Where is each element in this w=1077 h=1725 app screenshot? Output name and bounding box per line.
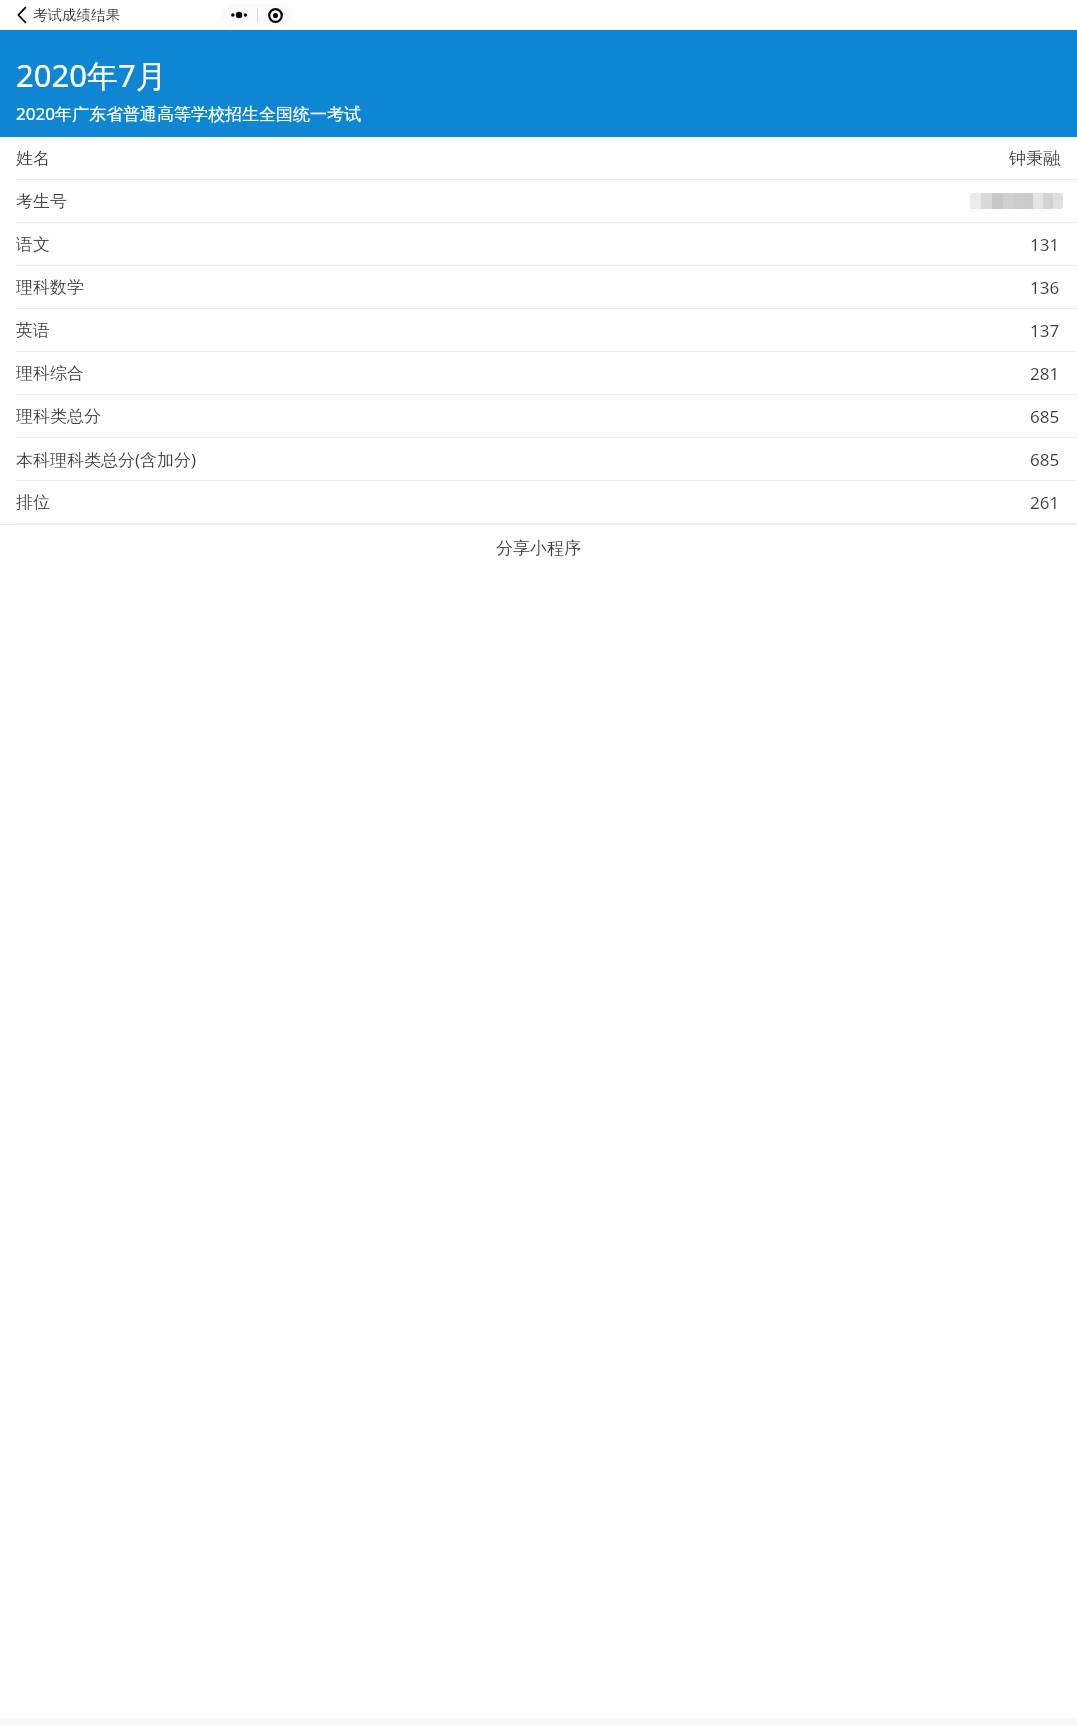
staticText: 261	[1030, 491, 1060, 514]
button[interactable]: 排位	[0, 481, 1077, 523]
staticText: 英语	[16, 320, 50, 341]
staticText: 钟秉融	[1009, 148, 1060, 169]
button[interactable]: 本科理科类总分(含加分)	[0, 438, 1077, 480]
staticText: 131	[1030, 233, 1060, 256]
staticText: 分享小程序	[496, 538, 581, 559]
button[interactable]: 更多	[221, 4, 257, 26]
button[interactable]: 理科综合	[0, 352, 1077, 394]
button[interactable]: 考生号	[0, 180, 1077, 222]
button[interactable]: 理科数学	[0, 266, 1077, 308]
staticText: 理科数学	[16, 277, 84, 298]
staticText: 685	[1030, 448, 1060, 471]
staticText: 本科理科类总分(含加分)	[16, 448, 197, 471]
staticText: 理科类总分	[16, 406, 101, 427]
staticText: 2020年7月	[16, 54, 167, 96]
staticText: 685	[1030, 405, 1060, 428]
button[interactable]: 返回	[8, 1, 36, 29]
staticText: 137	[1030, 319, 1060, 342]
button[interactable]: 姓名	[0, 137, 1077, 179]
button[interactable]: 语文	[0, 223, 1077, 265]
button[interactable]: 关闭	[258, 4, 293, 26]
staticText: 理科综合	[16, 363, 84, 384]
staticText: 281	[1030, 362, 1060, 385]
staticText: 排位	[16, 492, 50, 513]
staticText: 考生号	[16, 191, 67, 212]
staticText: 2020年广东省普通高等学校招生全国统一考试	[16, 102, 361, 125]
button[interactable]: 分享小程序	[0, 525, 1077, 571]
staticText: 语文	[16, 234, 50, 255]
button[interactable]: 英语	[0, 309, 1077, 351]
staticText: 136	[1030, 276, 1060, 299]
button[interactable]: 理科类总分	[0, 395, 1077, 437]
staticText: 姓名	[16, 148, 50, 169]
staticText: 考试成绩结果	[33, 6, 120, 24]
